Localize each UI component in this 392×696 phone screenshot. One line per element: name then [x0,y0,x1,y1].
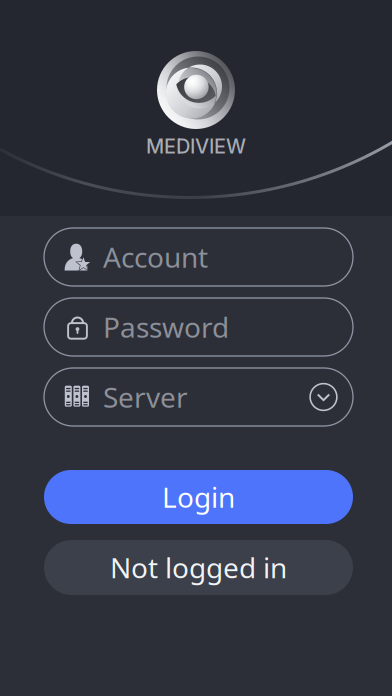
button[interactable]: Server [44,368,353,426]
staticText: Not logged in [110,549,287,586]
button[interactable]: Password [44,298,353,356]
button[interactable]: Account [44,228,353,286]
staticText: MEDIVIEW [146,134,246,158]
button[interactable]: Not logged in [44,540,353,595]
button[interactable]: Login [44,470,353,524]
staticText: Login [162,478,235,516]
staticText: Password [103,308,229,346]
staticText: Account [103,238,208,276]
staticText: Server [103,378,188,416]
